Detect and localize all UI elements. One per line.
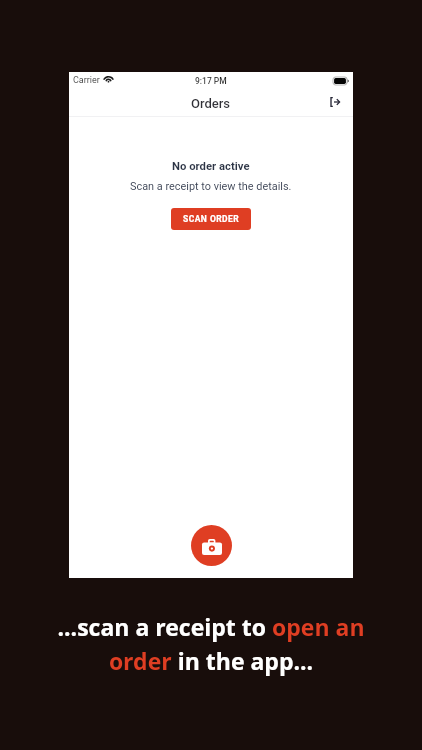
- button[interactable]: Scan receipt: [191, 525, 232, 566]
- button[interactable]: SCAN ORDER: [171, 208, 251, 230]
- staticText: 9:17 PM: [195, 76, 227, 86]
- staticText: SCAN ORDER: [183, 214, 240, 224]
- staticText: Scan a receipt to view the details.: [130, 180, 292, 193]
- staticText: No order active: [172, 160, 250, 173]
- staticText: Carrier: [73, 75, 100, 86]
- button[interactable]: Log out: [325, 92, 345, 112]
- staticText: Orders: [191, 96, 231, 111]
- staticText: ...scan a receipt to open an order in th…: [26, 611, 396, 677]
